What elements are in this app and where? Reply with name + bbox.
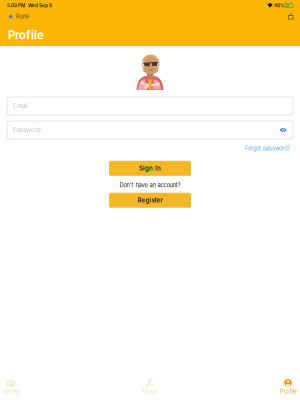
staticText: Home (3, 388, 19, 395)
button[interactable]: Delete (286, 13, 296, 20)
staticText: Music (142, 388, 157, 395)
staticText: Password (13, 126, 41, 134)
staticText: Register (137, 196, 162, 204)
button[interactable]: Show password (279, 127, 287, 133)
button[interactable]: Profile (277, 378, 299, 396)
staticText: Profile (8, 28, 44, 42)
button[interactable]: Register (109, 193, 191, 208)
button[interactable]: Sign In (109, 161, 191, 176)
staticText: Email (13, 102, 27, 110)
button[interactable]: Forgot password? (245, 143, 290, 154)
staticText: Wed Sep 9 (25, 3, 52, 8)
staticText: Rune (16, 13, 29, 20)
button[interactable]: Rune (4, 11, 31, 21)
staticText: Don't have an account? (119, 182, 180, 189)
staticText: Forgot password? (245, 145, 290, 152)
staticText: 48% (273, 3, 285, 8)
button[interactable]: Home (0, 378, 22, 396)
button[interactable]: Music (138, 378, 160, 396)
staticText: Sign In (139, 165, 161, 172)
staticText: Profile (279, 388, 296, 395)
staticText: 5:09 PM (7, 3, 25, 8)
